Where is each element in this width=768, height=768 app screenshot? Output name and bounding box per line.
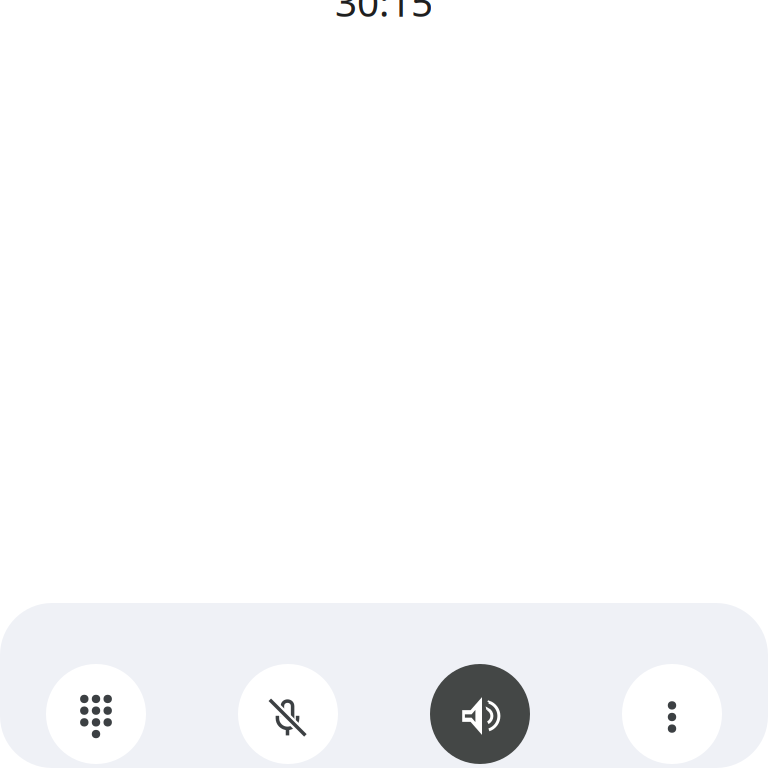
button[interactable]: Dial pad [46,664,146,764]
button[interactable]: More options [622,664,722,764]
button[interactable]: Speaker [430,664,530,764]
button[interactable]: Unmute [238,664,338,764]
staticText: 30:15 [335,0,433,27]
